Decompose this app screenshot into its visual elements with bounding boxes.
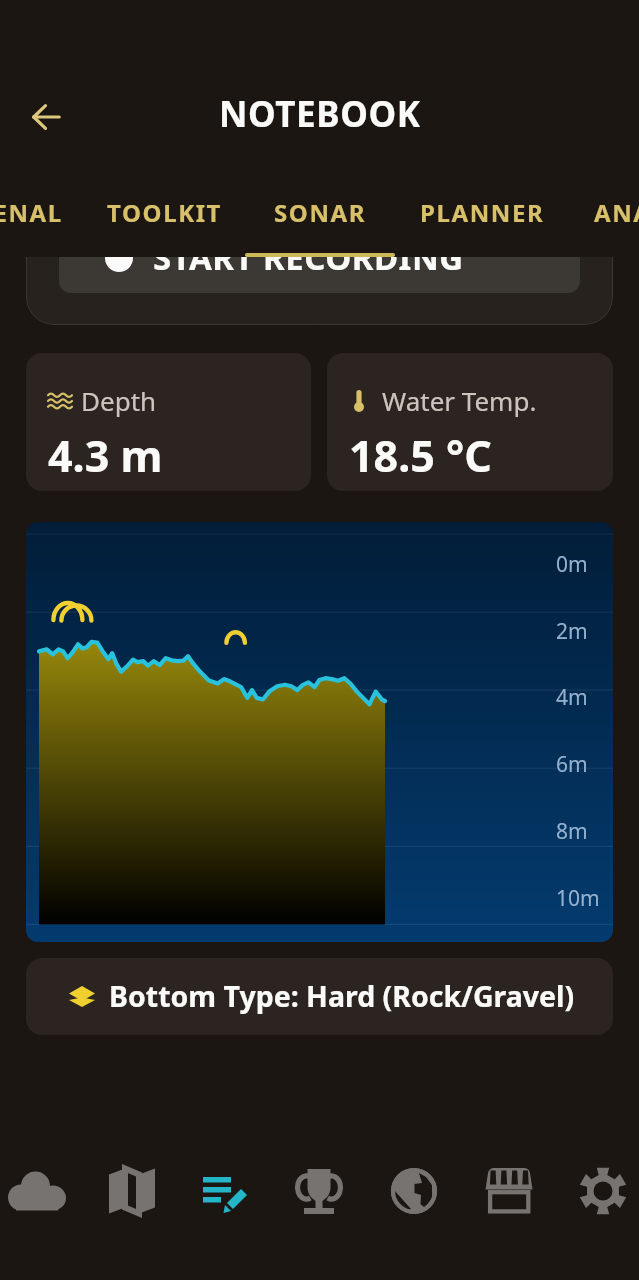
button[interactable]: Water Temp. — [327, 353, 613, 491]
button[interactable]: 0m — [26, 522, 613, 942]
button[interactable]: ARSENAL — [0, 180, 84, 258]
staticText: 8m — [556, 817, 588, 846]
button[interactable]: Settings — [571, 1159, 635, 1223]
button[interactable]: START RECORDING — [59, 257, 580, 293]
staticText: 0m — [556, 550, 588, 579]
staticText: 2m — [556, 617, 588, 646]
staticText: Depth — [81, 383, 157, 418]
button[interactable]: Back — [22, 93, 70, 141]
staticText: 6m — [556, 750, 588, 779]
button[interactable]: Explore — [382, 1159, 446, 1223]
button[interactable]: Records — [287, 1159, 351, 1223]
staticText: ANALYTICS — [594, 196, 639, 229]
staticText: 10m — [556, 884, 600, 913]
button[interactable]: SONAR — [246, 180, 394, 258]
staticText: START RECORDING — [153, 257, 464, 280]
staticText: TOOLKIT — [107, 196, 223, 229]
staticText: 18.5 °C — [349, 426, 492, 485]
button[interactable]: Map — [100, 1159, 164, 1223]
staticText: NOTEBOOK — [219, 90, 421, 138]
button[interactable]: Depth — [26, 353, 311, 491]
staticText: ARSENAL — [0, 196, 63, 229]
staticText: Bottom Type: Hard (Rock/Gravel) — [109, 977, 575, 1016]
staticText: SONAR — [274, 196, 367, 229]
staticText: Water Temp. — [382, 383, 537, 418]
button[interactable]: TOOLKIT — [84, 180, 246, 258]
button[interactable]: Weather — [5, 1159, 69, 1223]
staticText: PLANNER — [420, 196, 545, 229]
staticText: 4m — [556, 683, 588, 712]
button[interactable]: Bottom Type: Hard (Rock/Gravel) — [26, 958, 613, 1035]
button[interactable]: Shop — [477, 1159, 541, 1223]
staticText: 4.3 m — [48, 426, 163, 485]
button[interactable]: Notebook — [194, 1159, 258, 1223]
button[interactable]: ANALYTICS — [570, 180, 639, 258]
button[interactable]: PLANNER — [394, 180, 570, 258]
